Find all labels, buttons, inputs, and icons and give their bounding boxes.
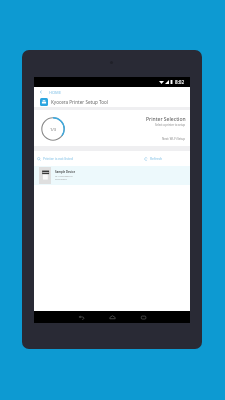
button[interactable]: Printer is not listed [34, 156, 74, 161]
staticText: Kyocera Printer Setup Tool [51, 99, 108, 105]
staticText: Next: Wi-Fi Setup [162, 137, 186, 141]
staticText: Printer is not listed [43, 156, 74, 161]
button[interactable]: HOME [34, 87, 190, 97]
button[interactable]: Home [102, 311, 122, 323]
button[interactable]: Refresh [144, 156, 190, 161]
staticText: 1/3 [50, 127, 57, 132]
staticText: Refresh [150, 156, 163, 161]
staticText: Select a printer to setup [155, 123, 186, 127]
staticText: IP: 10.50.8049.18 [55, 175, 73, 178]
staticText: 8:02 [175, 79, 185, 85]
button[interactable]: Sample Device [34, 166, 190, 185]
button[interactable]: Recents [133, 311, 153, 323]
staticText: Sample Device [55, 170, 76, 174]
staticText: HOME [49, 90, 61, 95]
staticText: Printer Selection [146, 116, 186, 123]
button[interactable]: Back [71, 311, 91, 323]
staticText: Wi-Fi Direct [55, 178, 67, 181]
